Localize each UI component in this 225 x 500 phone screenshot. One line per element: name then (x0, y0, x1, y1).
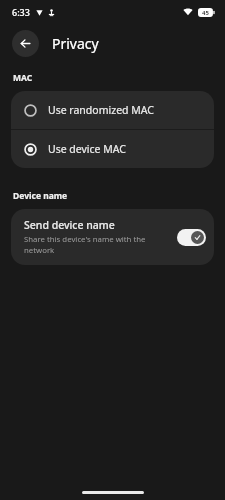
staticText: Device name (13, 190, 68, 202)
button[interactable]: Back (12, 30, 39, 57)
button[interactable]: Use randomized MAC (11, 91, 214, 129)
button[interactable]: Send device name toggle (177, 229, 206, 246)
staticText: 45 (202, 9, 209, 17)
staticText: 6:33 (12, 6, 30, 18)
staticText: Privacy (52, 34, 99, 53)
staticText: Share this device's name with the networ… (24, 234, 171, 256)
button[interactable]: Send device name (11, 209, 214, 265)
staticText: MAC (13, 72, 33, 84)
staticText: Use device MAC (48, 142, 126, 156)
staticText: Send device name (24, 218, 115, 232)
staticText: Use randomized MAC (48, 103, 154, 117)
button[interactable]: Use device MAC (11, 130, 214, 168)
